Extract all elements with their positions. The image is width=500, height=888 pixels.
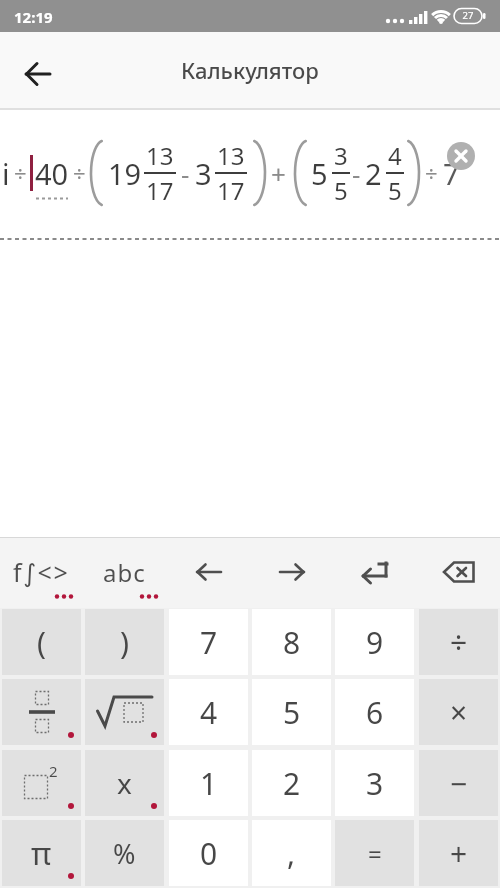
button[interactable]: [85, 679, 164, 745]
button[interactable]: ,: [252, 820, 331, 886]
staticText: %: [113, 835, 136, 872]
button[interactable]: ): [85, 609, 164, 675]
staticText: 8: [283, 622, 301, 663]
staticText: 17: [217, 174, 245, 207]
staticText: Калькулятор: [181, 55, 319, 85]
staticText: -: [181, 156, 190, 191]
staticText: (: [37, 622, 46, 663]
button[interactable]: 9: [335, 609, 414, 675]
staticText: 17: [146, 174, 174, 207]
staticText: 19: [108, 154, 142, 193]
staticText: 13: [146, 139, 174, 172]
button[interactable]: 2: [252, 750, 331, 816]
button[interactable]: (: [2, 609, 81, 675]
staticText: 9: [366, 622, 384, 663]
staticText: 2: [283, 763, 301, 804]
button[interactable]: x: [85, 750, 164, 816]
staticText: 13: [217, 139, 245, 172]
staticText: 5: [283, 692, 301, 733]
button[interactable]: 3: [335, 750, 414, 816]
staticText: ÷: [14, 158, 27, 188]
staticText: 5: [388, 174, 402, 207]
button[interactable]: [167, 537, 250, 607]
button[interactable]: 0: [169, 820, 248, 886]
button[interactable]: [333, 537, 416, 607]
staticText: 7: [443, 154, 460, 193]
staticText: 27: [458, 9, 478, 22]
staticText: 3: [366, 763, 384, 804]
staticText: =: [368, 837, 382, 870]
staticText: 5: [311, 154, 328, 193]
staticText: f∫<>: [13, 555, 70, 589]
staticText: ): [120, 622, 129, 663]
button[interactable]: [250, 537, 333, 607]
button[interactable]: [447, 142, 475, 170]
staticText: 4: [200, 692, 218, 733]
button[interactable]: 1: [169, 750, 248, 816]
button[interactable]: 7: [169, 609, 248, 675]
button[interactable]: =: [335, 820, 414, 886]
staticText: −: [450, 763, 468, 804]
staticText: ÷: [425, 158, 438, 188]
button[interactable]: 2: [2, 750, 81, 816]
staticText: x: [117, 764, 132, 802]
staticText: +: [271, 156, 286, 191]
staticText: π: [31, 832, 52, 874]
staticText: 7: [200, 622, 218, 663]
staticText: 4: [388, 139, 402, 172]
staticText: 5: [334, 174, 348, 207]
staticText: abc: [103, 556, 146, 589]
staticText: ×: [450, 692, 468, 733]
button[interactable]: π: [2, 820, 81, 886]
button[interactable]: −: [419, 750, 498, 816]
staticText: -: [352, 156, 361, 191]
button[interactable]: 4: [169, 679, 248, 745]
staticText: 1: [200, 763, 218, 804]
staticText: 0: [200, 833, 218, 874]
button[interactable]: abc: [83, 537, 166, 607]
staticText: i: [2, 154, 10, 193]
staticText: 6: [366, 692, 384, 733]
staticText: 12:19: [14, 7, 53, 27]
staticText: 2: [49, 761, 58, 781]
staticText: ÷: [450, 622, 468, 663]
button[interactable]: 5: [252, 679, 331, 745]
button[interactable]: [14, 50, 62, 98]
staticText: ,: [287, 833, 296, 874]
staticText: ÷: [73, 158, 86, 188]
button[interactable]: 6: [335, 679, 414, 745]
staticText: 3: [195, 154, 212, 193]
button[interactable]: ÷: [419, 609, 498, 675]
button[interactable]: [417, 537, 500, 607]
staticText: 2: [365, 154, 382, 193]
button[interactable]: %: [85, 820, 164, 886]
button[interactable]: 8: [252, 609, 331, 675]
button[interactable]: [2, 679, 81, 745]
staticText: +: [450, 833, 468, 874]
button[interactable]: ×: [419, 679, 498, 745]
button[interactable]: f∫<>: [0, 537, 83, 607]
staticText: 40: [35, 154, 69, 193]
button[interactable]: +: [419, 820, 498, 886]
staticText: 3: [334, 139, 348, 172]
